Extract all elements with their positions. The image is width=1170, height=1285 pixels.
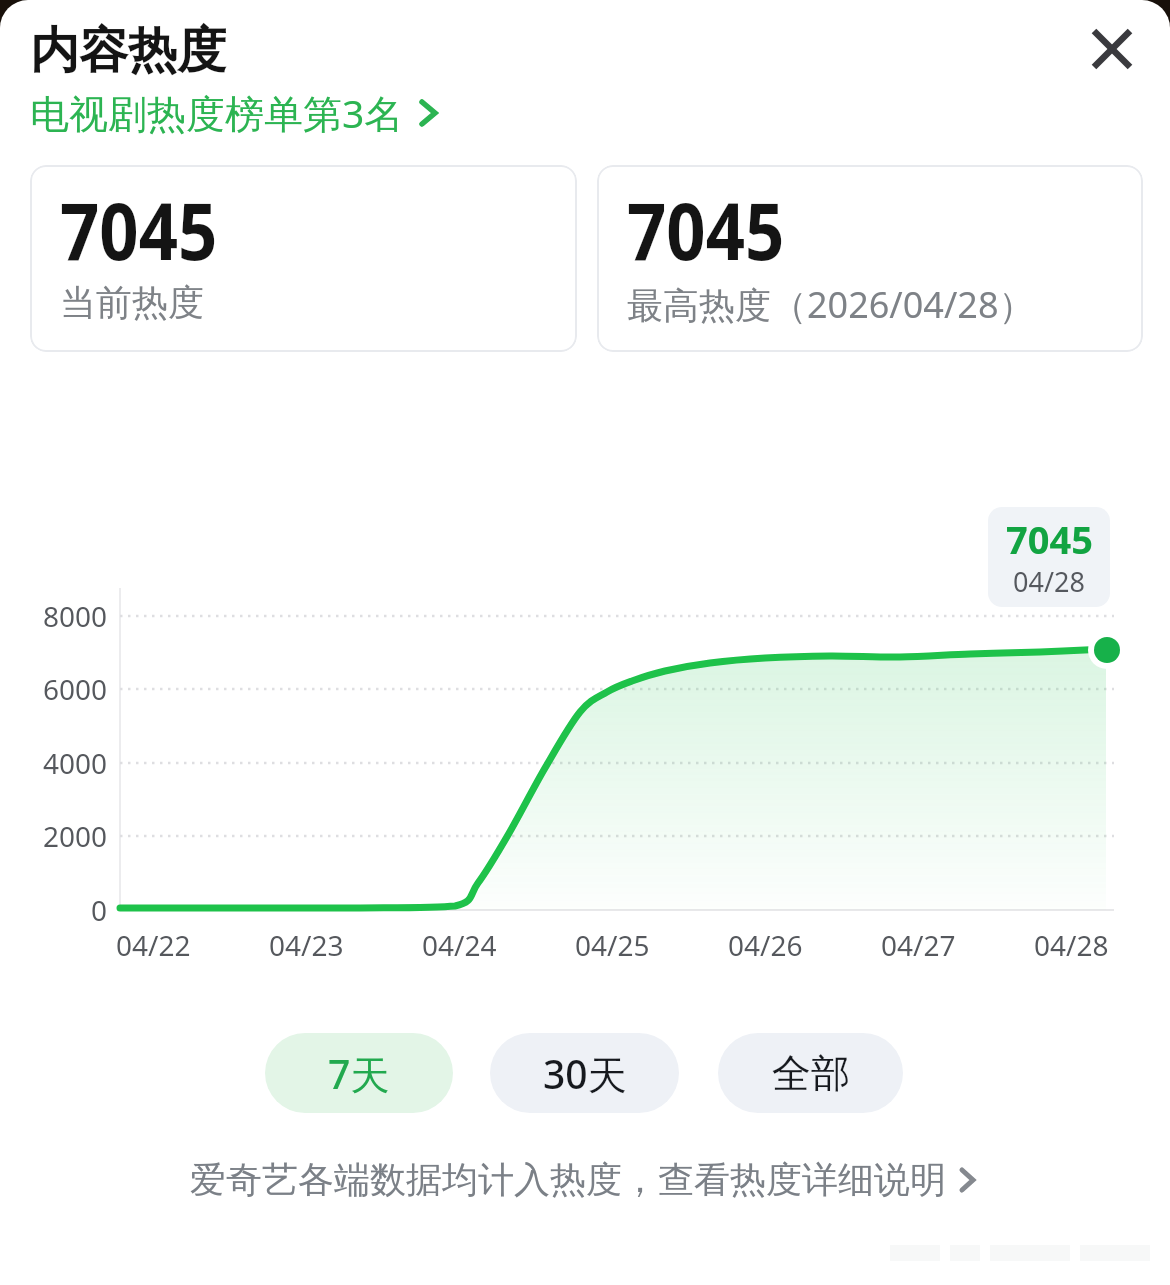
staticText: 最高热度（2026/04/28） — [627, 280, 1035, 329]
button[interactable]: 7045 — [597, 165, 1143, 352]
staticText: 04/23 — [269, 926, 344, 964]
staticText: 04/28 — [1013, 563, 1085, 600]
staticText: 7045 — [627, 176, 784, 284]
staticText: 爱奇艺各端数据均计入热度，查看热度详细说明 — [190, 1157, 946, 1202]
button[interactable]: 全部 — [718, 1033, 903, 1113]
staticText: 8000 — [43, 597, 108, 635]
button[interactable]: 7045 — [30, 165, 577, 352]
staticText: 全部 — [772, 1049, 850, 1098]
staticText: 04/28 — [1034, 926, 1109, 964]
button[interactable]: 7天 — [265, 1033, 453, 1113]
staticText: 内容热度 — [30, 20, 226, 82]
button[interactable] — [1080, 18, 1144, 82]
staticText: 7045 — [1006, 513, 1093, 565]
staticText: 04/24 — [422, 926, 497, 964]
staticText: 当前热度 — [60, 280, 204, 325]
staticText: 04/26 — [728, 926, 803, 964]
staticText: 04/22 — [116, 926, 191, 964]
staticText: 4000 — [43, 744, 108, 782]
staticText: 04/27 — [881, 926, 956, 964]
staticText: 30天 — [543, 1047, 627, 1100]
staticText: 2000 — [43, 817, 108, 855]
button[interactable]: 电视剧热度榜单第3名 — [30, 86, 442, 139]
staticText: 6000 — [43, 670, 108, 708]
staticText: 04/25 — [575, 926, 650, 964]
staticText: 0 — [91, 891, 108, 929]
staticText: 电视剧热度榜单第3名 — [30, 86, 404, 139]
staticText: 7045 — [60, 176, 217, 284]
staticText: 7天 — [328, 1047, 390, 1100]
button[interactable]: 30天 — [490, 1033, 679, 1113]
button[interactable]: 爱奇艺各端数据均计入热度，查看热度详细说明 — [0, 1157, 1170, 1202]
